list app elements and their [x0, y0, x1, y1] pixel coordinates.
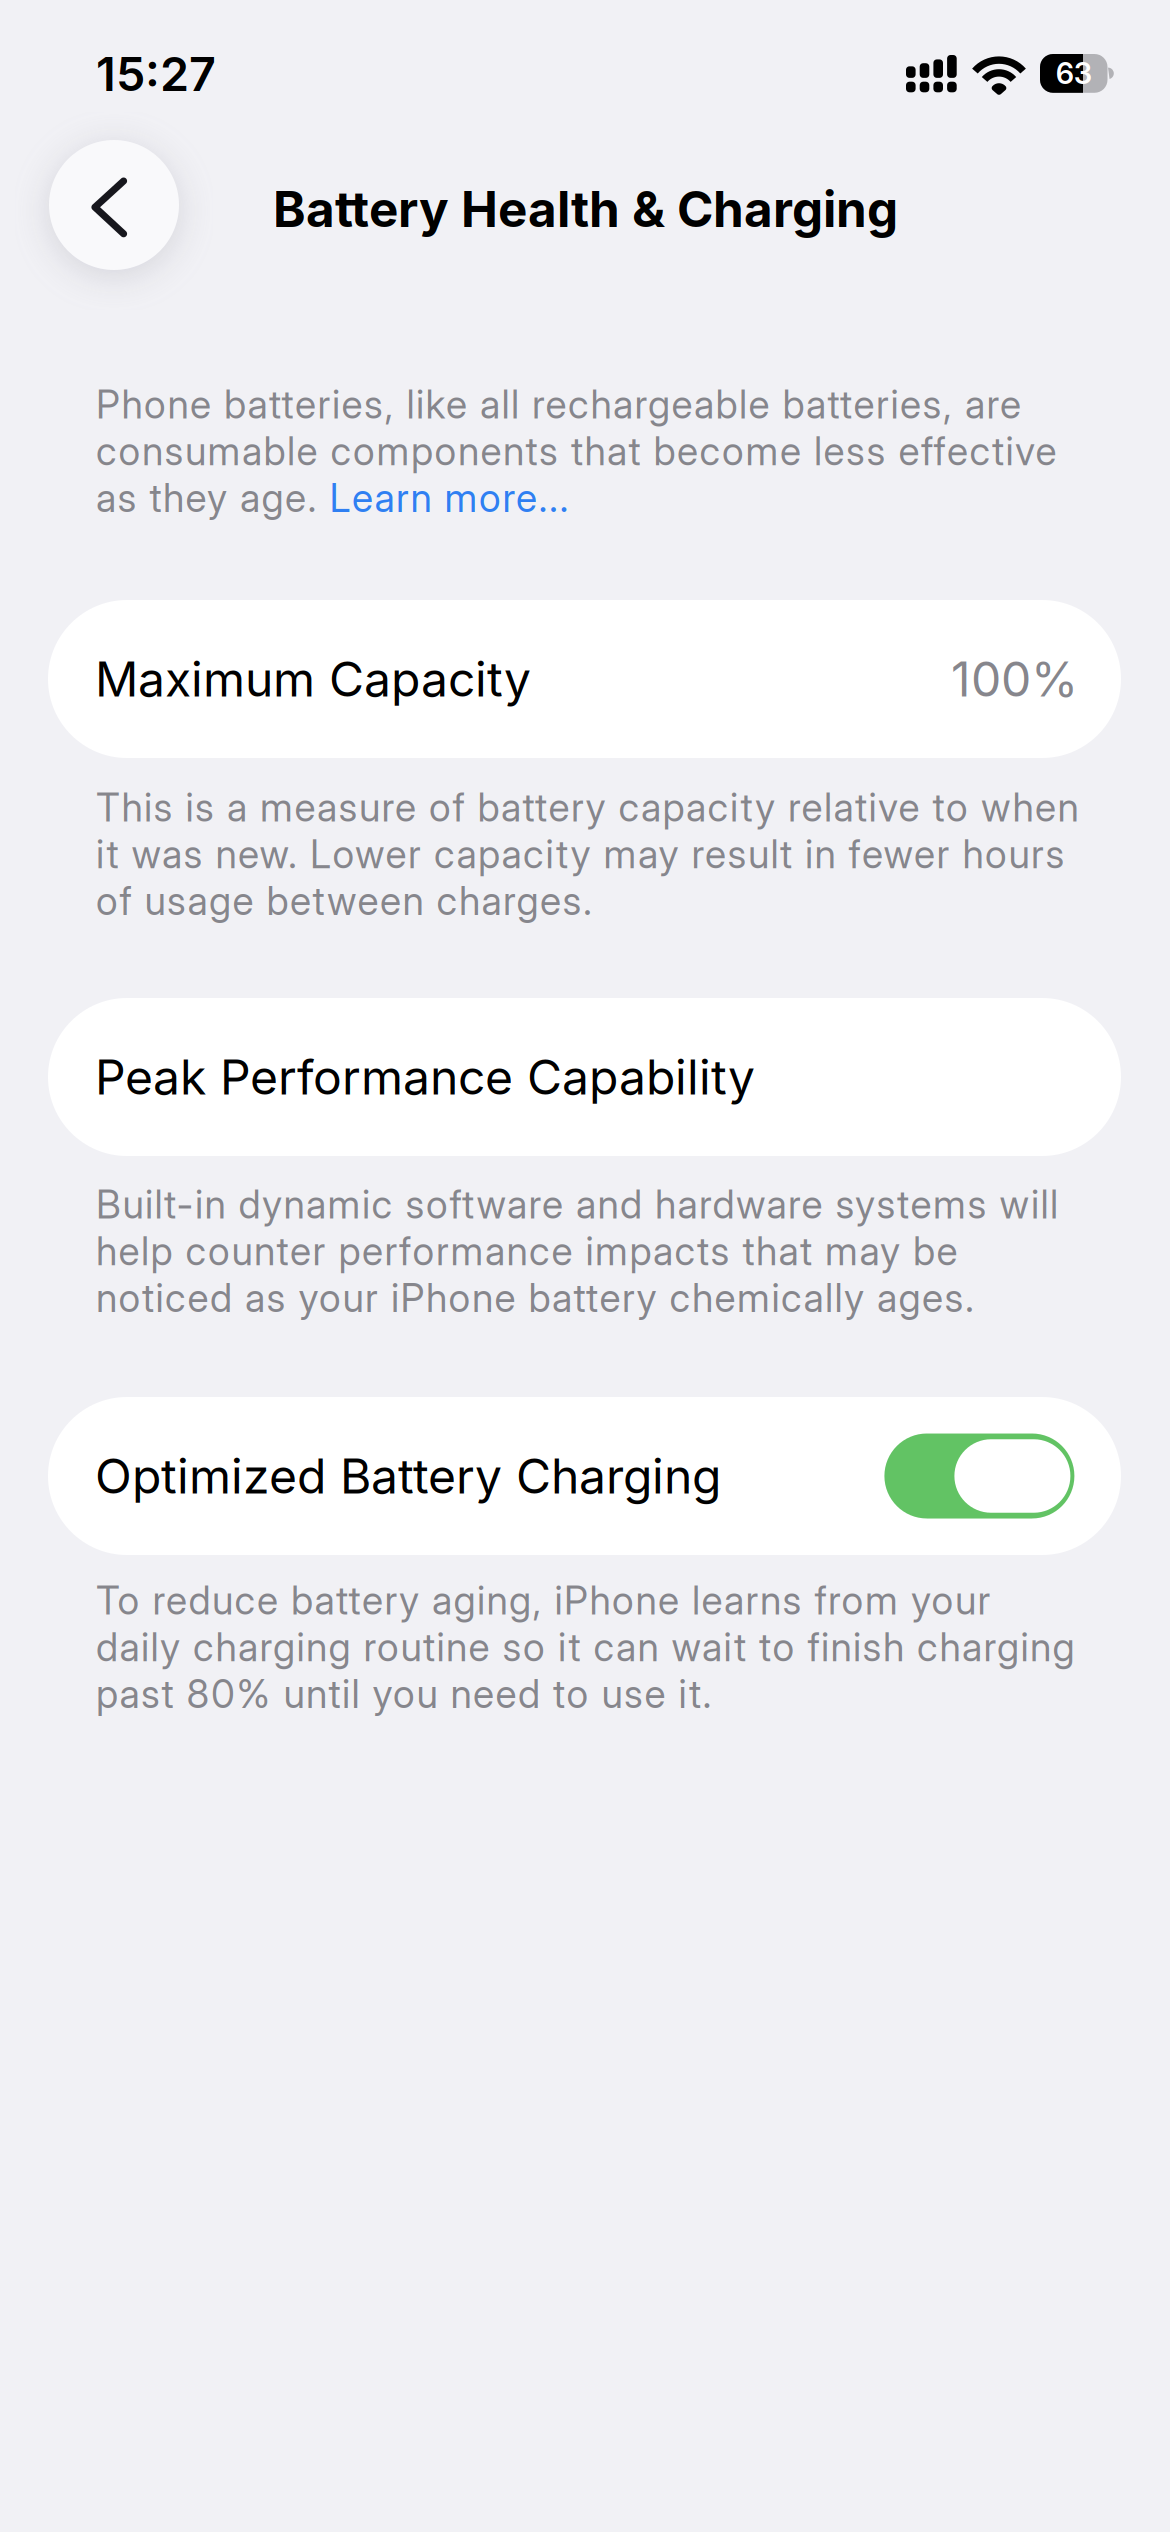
button[interactable]: Back — [49, 140, 179, 270]
staticText: Phone batteries, like all rechargeable b… — [96, 381, 1056, 521]
staticText: To reduce battery aging, iPhone learns f… — [96, 1577, 1074, 1717]
staticText: Battery Health & Charging — [273, 179, 898, 239]
staticText: 15:27 — [96, 46, 216, 102]
staticText: Optimized Battery Charging — [95, 1447, 721, 1505]
button[interactable]: Optimized Battery Charging — [48, 1397, 1121, 1555]
staticText: 63 — [1056, 56, 1092, 91]
staticText: Maximum Capacity — [95, 650, 531, 708]
staticText: Built-in dynamic software and hardware s… — [96, 1181, 1058, 1321]
staticText: Peak Performance Capability — [95, 1048, 755, 1106]
button[interactable]: Peak Performance Capability — [48, 998, 1121, 1156]
staticText: 100% — [951, 650, 1078, 708]
button[interactable]: Learn more — [328, 469, 572, 515]
staticText: This is a measure of battery capacity re… — [96, 784, 1078, 924]
button[interactable]: Maximum Capacity — [48, 600, 1121, 758]
